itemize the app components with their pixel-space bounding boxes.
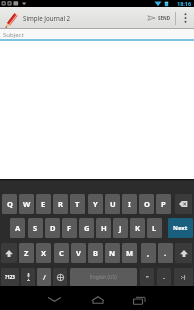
button[interactable]: English (US) (70, 268, 137, 286)
staticText: G (84, 223, 90, 233)
staticText: O (144, 199, 150, 209)
staticText: 18:16 (177, 0, 192, 7)
staticText: . (164, 248, 167, 258)
button[interactable]: V (71, 243, 86, 263)
button[interactable] (175, 243, 192, 263)
button[interactable]: H (96, 218, 111, 238)
staticText: , (147, 248, 150, 258)
button[interactable] (53, 268, 67, 286)
staticText: W (23, 199, 31, 209)
staticText: X (41, 248, 47, 258)
button[interactable]: Z (19, 243, 34, 263)
staticText: S (33, 223, 38, 233)
button[interactable]: - (157, 268, 171, 286)
staticText: K (135, 223, 140, 233)
button[interactable]: D (45, 218, 60, 238)
staticText: Z (24, 248, 29, 258)
staticText: D (50, 223, 56, 233)
staticText: B (93, 248, 98, 258)
staticText: / (43, 272, 46, 282)
button[interactable]: S (28, 218, 43, 238)
button[interactable]: P (156, 194, 171, 214)
button[interactable]: K (130, 218, 145, 238)
button[interactable]: ?123 (1, 268, 19, 286)
button[interactable] (1, 243, 17, 263)
button[interactable]: . (158, 243, 173, 263)
staticText: - (163, 274, 165, 281)
staticText: Next (173, 224, 188, 232)
button[interactable]: O (139, 194, 154, 214)
button[interactable]: C (54, 243, 69, 263)
staticText: P (161, 199, 166, 209)
button[interactable]: X (36, 243, 51, 263)
button[interactable]: B (88, 243, 103, 263)
staticText: Subject (3, 31, 24, 39)
button[interactable] (21, 268, 35, 286)
staticText: N (109, 248, 116, 258)
button[interactable] (176, 7, 194, 29)
staticText: J (119, 223, 122, 233)
staticText: L (152, 223, 157, 233)
staticText: E (41, 199, 46, 209)
button[interactable]: " (140, 268, 154, 286)
staticText: Y (93, 199, 98, 209)
button[interactable]: Q (2, 194, 17, 214)
staticText: :-) (181, 274, 186, 280)
button[interactable]: Subject (0, 29, 194, 41)
staticText: M (126, 248, 134, 258)
button[interactable]: E (36, 194, 51, 214)
button[interactable]: Next (168, 218, 193, 238)
button[interactable]: SEND (147, 7, 170, 29)
staticText: SEND (158, 15, 170, 21)
staticText: A (15, 223, 21, 233)
staticText: R (58, 199, 63, 209)
button[interactable]: / (37, 268, 51, 286)
button[interactable] (129, 286, 194, 310)
button[interactable]: W (19, 194, 34, 214)
staticText: C (59, 248, 64, 258)
button[interactable]: U (105, 194, 120, 214)
staticText: U (110, 199, 116, 209)
button[interactable]: A (10, 218, 25, 238)
staticText: ?123 (5, 274, 15, 280)
staticText: F (67, 223, 72, 233)
button[interactable]: M (122, 243, 137, 263)
staticText: I (128, 199, 131, 209)
staticText: Q (7, 199, 13, 209)
button[interactable]: G (79, 218, 94, 238)
staticText: V (76, 248, 81, 258)
button[interactable]: F (62, 218, 77, 238)
button[interactable] (175, 194, 192, 214)
staticText: H (101, 223, 107, 233)
button[interactable]: R (53, 194, 68, 214)
button[interactable]: I (122, 194, 137, 214)
button[interactable]: Y (88, 194, 103, 214)
button[interactable] (64, 286, 129, 310)
button[interactable]: , (141, 243, 156, 263)
staticText: " (146, 274, 149, 281)
button[interactable]: N (105, 243, 120, 263)
button[interactable]: J (113, 218, 128, 238)
button[interactable]: :-) (174, 268, 193, 286)
staticText: English (US) (90, 274, 117, 281)
button[interactable]: T (70, 194, 85, 214)
button[interactable]: L (147, 218, 162, 238)
button[interactable] (0, 286, 64, 310)
staticText: Simple Journal 2 (23, 14, 71, 22)
staticText: T (75, 199, 80, 209)
